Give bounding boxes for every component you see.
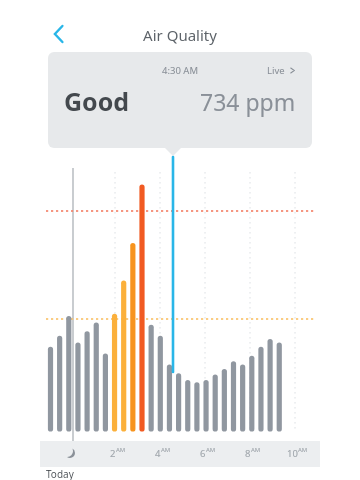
staticText: 4:30 AM bbox=[162, 64, 199, 77]
staticText: 4 bbox=[155, 447, 161, 460]
staticText: 8 bbox=[245, 447, 251, 460]
staticText: 10 bbox=[287, 447, 298, 460]
staticText: AM bbox=[116, 446, 126, 454]
staticText: 734 ppm bbox=[200, 86, 296, 117]
staticText: AM bbox=[251, 446, 261, 454]
staticText: 6 bbox=[200, 447, 206, 460]
staticText: 2 bbox=[110, 447, 116, 460]
button[interactable]: Back bbox=[44, 20, 76, 48]
staticText: AM bbox=[161, 446, 171, 454]
staticText: Live bbox=[267, 64, 285, 77]
staticText: AM bbox=[298, 446, 308, 454]
button[interactable]: 4:30 AM bbox=[48, 52, 312, 148]
staticText: Good bbox=[64, 84, 130, 118]
staticText: AM bbox=[206, 446, 216, 454]
staticText: Air Quality bbox=[0, 25, 360, 45]
staticText: Today bbox=[46, 467, 74, 480]
